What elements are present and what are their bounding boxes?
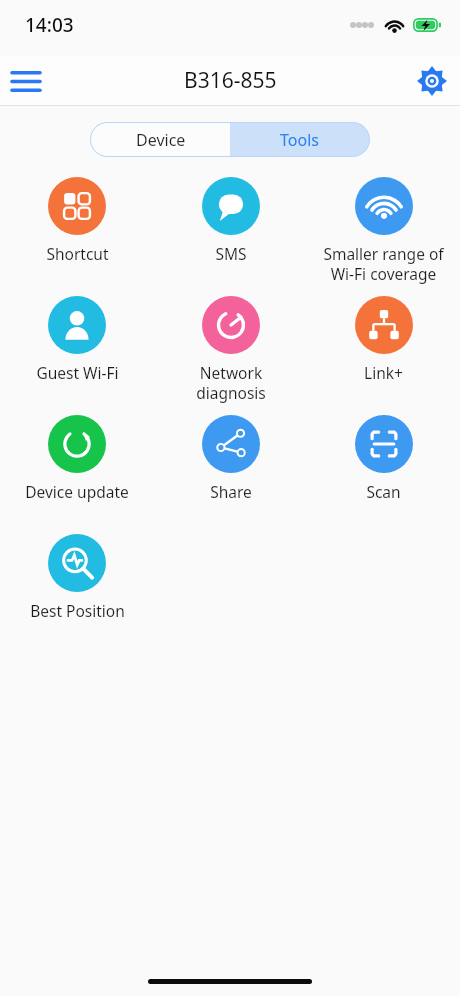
staticText: Network diagnosis [196, 362, 266, 404]
button[interactable]: Guest Wi-Fi [0, 296, 154, 415]
button[interactable]: Network diagnosis [154, 296, 307, 415]
button[interactable]: Share [154, 415, 307, 534]
button[interactable]: Smaller range of Wi-Fi coverage [307, 177, 460, 296]
staticText: Scan [366, 481, 401, 502]
button[interactable]: Best Position [0, 534, 154, 653]
staticText: Device [136, 129, 186, 151]
staticText: Smaller range of Wi-Fi coverage [323, 243, 444, 285]
button[interactable]: Link+ [307, 296, 460, 415]
staticText: Guest Wi-Fi [36, 362, 119, 383]
button[interactable]: Device update [0, 415, 154, 534]
staticText: Tools [280, 129, 319, 151]
button[interactable]: Menu [2, 57, 50, 105]
button[interactable]: Device [91, 123, 230, 156]
staticText: Device update [25, 481, 129, 502]
button[interactable]: SMS [154, 177, 307, 296]
staticText: SMS [215, 243, 247, 264]
staticText: 14:03 [25, 12, 74, 38]
button[interactable]: Shortcut [0, 177, 154, 296]
button[interactable]: Scan [307, 415, 460, 534]
staticText: B316-855 [184, 66, 277, 95]
staticText: Share [210, 481, 252, 502]
staticText: Link+ [364, 362, 403, 383]
button[interactable]: Settings [408, 57, 456, 105]
staticText: Best Position [30, 600, 125, 621]
staticText: Shortcut [46, 243, 109, 264]
button[interactable]: Tools [230, 123, 369, 156]
